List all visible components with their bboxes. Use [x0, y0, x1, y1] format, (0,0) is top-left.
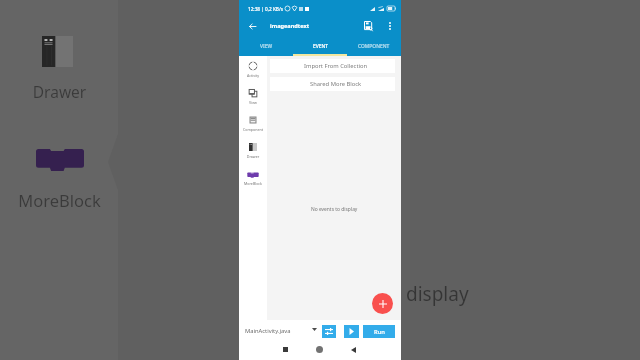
staticText: Shared More Block	[310, 80, 362, 88]
staticText: MoreBlock	[1, 189, 118, 211]
staticText: Drawer	[239, 154, 267, 159]
staticText: View	[239, 100, 267, 105]
button[interactable]: EVENT	[293, 38, 347, 54]
button[interactable]: VIEW	[239, 38, 293, 54]
button[interactable]: Component	[239, 110, 267, 137]
staticText: Drawer	[1, 81, 118, 102]
button[interactable]: COMPONENT	[347, 38, 401, 54]
staticText: Component	[239, 127, 267, 132]
staticText: display	[406, 281, 469, 307]
staticText: No events to display	[311, 206, 358, 213]
staticText: imageandtext	[270, 22, 310, 30]
button[interactable]: Add event	[372, 293, 393, 314]
button[interactable]: Import From Collection	[270, 59, 395, 73]
button[interactable]: MoreBlock	[239, 164, 267, 191]
button[interactable]: Settings	[322, 325, 336, 338]
staticText: Import From Collection	[304, 62, 368, 70]
button[interactable]: Shared More Block	[270, 77, 395, 91]
staticText: MoreBlock	[239, 181, 267, 186]
button[interactable]: Save	[361, 19, 375, 33]
button[interactable]: Preview	[344, 325, 359, 338]
staticText: Run	[374, 328, 385, 336]
button[interactable]: Back	[346, 342, 361, 357]
staticText: COMPONENT	[358, 43, 390, 50]
button[interactable]: More options	[384, 20, 396, 32]
button[interactable]: Choose file	[308, 323, 320, 335]
button[interactable]: Recents	[278, 342, 293, 357]
staticText: MainActivity.java	[245, 327, 291, 335]
button[interactable]: View	[239, 83, 267, 110]
button[interactable]: Home	[312, 342, 327, 357]
button[interactable]: Drawer	[239, 137, 267, 164]
button[interactable]: Run	[363, 325, 395, 338]
button[interactable]: Activity	[239, 56, 267, 83]
staticText: Activity	[239, 73, 267, 78]
staticText: 12:38 | 0,2 KB/s	[248, 6, 283, 12]
staticText: EVENT	[313, 43, 328, 50]
button[interactable]: Back	[245, 19, 259, 33]
staticText: VIEW	[260, 43, 273, 50]
